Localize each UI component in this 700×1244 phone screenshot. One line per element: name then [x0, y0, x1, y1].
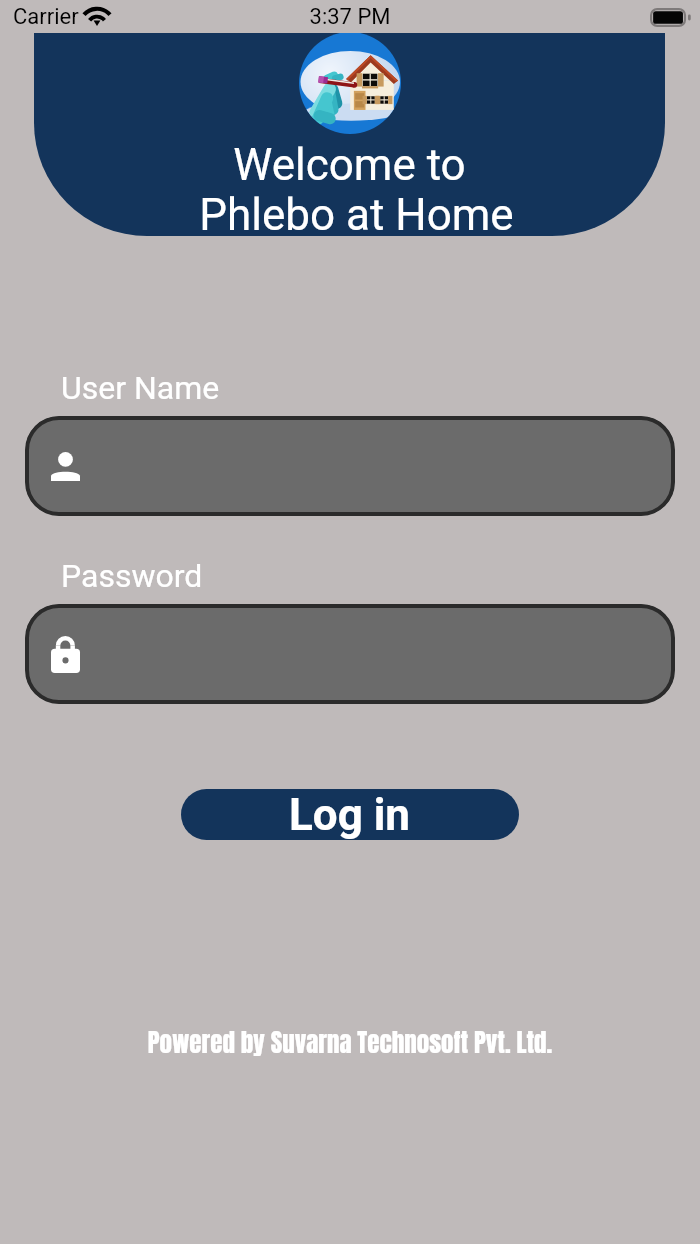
staticText: 3:37 PM [0, 4, 700, 30]
other: User name [51, 452, 80, 481]
button[interactable]: Log in [181, 789, 519, 840]
staticText: Phlebo at Home [41, 189, 665, 236]
other: Password [51, 636, 80, 673]
other: Wi-Fi [84, 6, 110, 26]
staticText: Password [61, 557, 203, 595]
staticText: Welcome to [34, 139, 665, 191]
other: Battery full [650, 8, 691, 27]
button[interactable]: Password [25, 604, 675, 704]
button[interactable]: User name [25, 416, 675, 516]
staticText: Carrier [13, 4, 79, 30]
staticText: User Name [61, 369, 220, 407]
staticText: Powered by Suvarna Technosoft Pvt. Ltd. [0, 1024, 700, 1062]
staticText: Log in [289, 789, 411, 840]
